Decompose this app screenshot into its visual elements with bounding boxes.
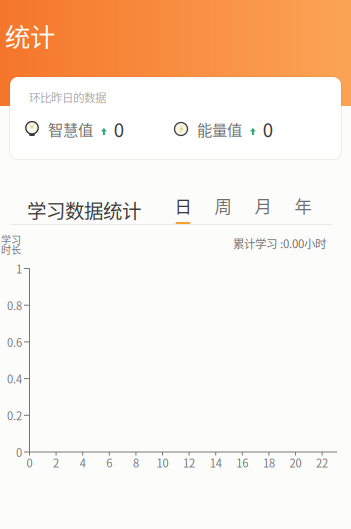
staticText: 4 <box>80 454 86 471</box>
staticText: 10 <box>156 454 168 471</box>
staticText: 12 <box>183 454 195 471</box>
staticText: 0 <box>114 115 124 142</box>
staticText: 月 <box>254 193 271 218</box>
staticText: 6 <box>106 454 112 471</box>
staticText: 学习数据统计 <box>27 196 141 224</box>
staticText: 0 <box>26 454 32 471</box>
staticText: 0 <box>263 115 273 142</box>
staticText: 0.8 <box>7 297 22 313</box>
staticText: 智慧值 <box>48 118 93 140</box>
staticText: 20 <box>289 454 301 471</box>
staticText: 统计 <box>5 17 55 54</box>
staticText: 日 <box>174 193 191 218</box>
button[interactable]: 年 <box>283 197 323 226</box>
staticText: 周 <box>214 193 231 218</box>
staticText: 22 <box>316 454 328 471</box>
staticText: 累计学习 :0.00小时 <box>233 235 326 252</box>
staticText: 0.4 <box>7 371 22 387</box>
staticText: 年 <box>294 193 311 218</box>
staticText: 8 <box>133 454 139 471</box>
staticText: 2 <box>53 454 59 471</box>
staticText: 环比昨日的数据 <box>29 89 106 106</box>
staticText: 14 <box>210 454 222 471</box>
staticText: 能量值 <box>197 118 242 140</box>
staticText: 16 <box>236 454 248 471</box>
staticText: 0 <box>16 444 22 460</box>
staticText: 0.6 <box>7 334 22 350</box>
staticText: 学习 <box>1 232 21 247</box>
staticText: 1 <box>16 260 22 277</box>
button[interactable]: 日 <box>163 197 203 226</box>
button[interactable]: 月 <box>243 197 283 226</box>
staticText: 18 <box>263 454 275 471</box>
staticText: 0.2 <box>7 407 22 423</box>
button[interactable]: 周 <box>203 197 243 226</box>
staticText: 时长 <box>1 242 21 257</box>
